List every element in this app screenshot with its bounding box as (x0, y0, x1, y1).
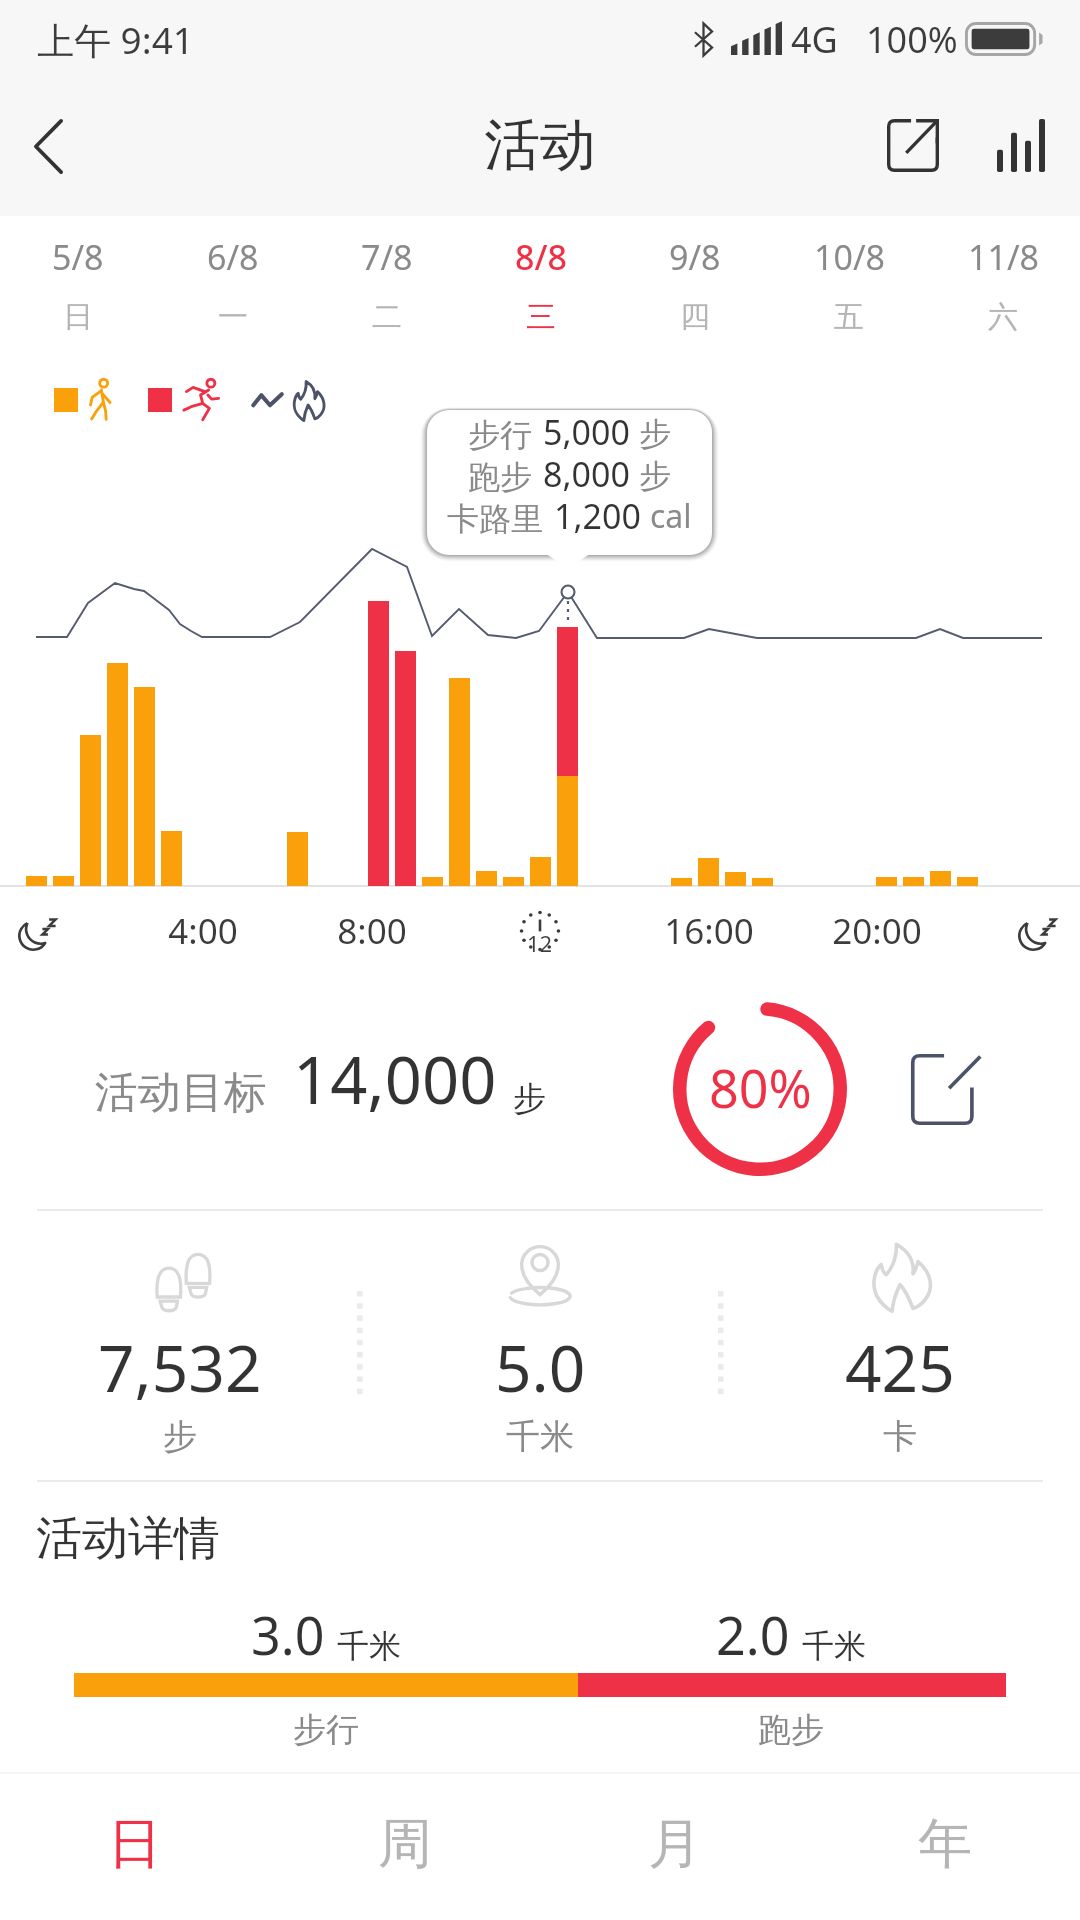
staticText: 千米 (802, 1626, 866, 1666)
staticText: 8:00 (292, 907, 452, 955)
button[interactable]: 5.0 (360, 1206, 720, 1459)
button[interactable]: 月 (540, 1774, 810, 1920)
staticText: 步 (639, 456, 671, 496)
button[interactable]: Back (2, 100, 94, 192)
staticText: 日 (63, 298, 93, 336)
staticText: 活动 (484, 110, 596, 181)
staticText: 12 (527, 928, 553, 958)
staticText: 千米 (506, 1415, 574, 1458)
staticText: 跑步 (671, 1709, 911, 1751)
staticText: cal (650, 494, 692, 538)
staticText: 步行 (206, 1709, 446, 1751)
staticText: 四 (680, 298, 710, 336)
staticText: 步 (639, 414, 671, 454)
button[interactable]: 年 (810, 1774, 1080, 1920)
staticText: 9/8 (669, 234, 721, 280)
staticText: 8,000 (543, 451, 630, 497)
button[interactable]: 9/8 (618, 234, 772, 336)
staticText: 3.0 (251, 1599, 325, 1670)
staticText: 千米 (337, 1626, 401, 1666)
staticText: 5/8 (52, 234, 104, 280)
staticText: 活动详情 (36, 1510, 220, 1568)
staticText: 周 (378, 1810, 432, 1878)
button[interactable]: Share (865, 98, 961, 194)
button[interactable]: 10/8 (772, 234, 926, 336)
staticText: 80% (709, 1052, 812, 1123)
button[interactable]: 5/8 (0, 234, 155, 336)
staticText: 跑步 (468, 457, 532, 497)
staticText: 三 (526, 298, 556, 336)
staticText: 一 (218, 298, 248, 336)
staticText: 日 (108, 1810, 162, 1878)
button[interactable]: 6/8 (155, 234, 310, 336)
button[interactable]: 7/8 (310, 234, 464, 336)
staticText: 上午 9:41 (37, 14, 195, 65)
staticText: 10/8 (814, 234, 885, 280)
staticText: 步 (163, 1415, 197, 1458)
button[interactable]: 日 (0, 1774, 270, 1920)
button[interactable]: 8/8 (464, 234, 618, 336)
staticText: 2.0 (716, 1599, 790, 1670)
staticText: 二 (372, 298, 402, 336)
staticText: 1,200 (554, 493, 641, 539)
button[interactable]: 11/8 (926, 234, 1080, 336)
button[interactable]: 周 (270, 1774, 540, 1920)
staticText: 425 (845, 1324, 955, 1411)
staticText: 7,532 (98, 1324, 262, 1411)
staticText: 年 (918, 1810, 972, 1878)
staticText: 活动目标 (95, 1066, 267, 1120)
staticText: 14,000 (293, 1035, 497, 1124)
staticText: 5.0 (495, 1324, 586, 1411)
staticText: 11/8 (968, 234, 1039, 280)
button[interactable]: 7,532 (0, 1206, 360, 1459)
staticText: 步行 (468, 415, 532, 455)
staticText: 8/8 (515, 234, 567, 280)
staticText: 7/8 (361, 234, 413, 280)
staticText: 6/8 (207, 234, 259, 280)
button[interactable]: Edit goal (886, 1029, 1006, 1149)
staticText: 五 (834, 298, 864, 336)
staticText: 20:00 (797, 907, 957, 955)
button[interactable]: Statistics (973, 98, 1069, 194)
staticText: 16:00 (629, 907, 789, 955)
staticText: 卡路里 (447, 499, 543, 539)
staticText: 六 (988, 298, 1018, 336)
staticText: 100% (866, 15, 958, 64)
staticText: 步 (513, 1078, 546, 1120)
button[interactable]: 425 (720, 1206, 1080, 1459)
staticText: 4:00 (123, 907, 283, 955)
staticText: 卡 (883, 1415, 917, 1458)
staticText: 5,000 (543, 409, 630, 455)
staticText: 月 (648, 1810, 702, 1878)
staticText: 4G (791, 15, 838, 64)
